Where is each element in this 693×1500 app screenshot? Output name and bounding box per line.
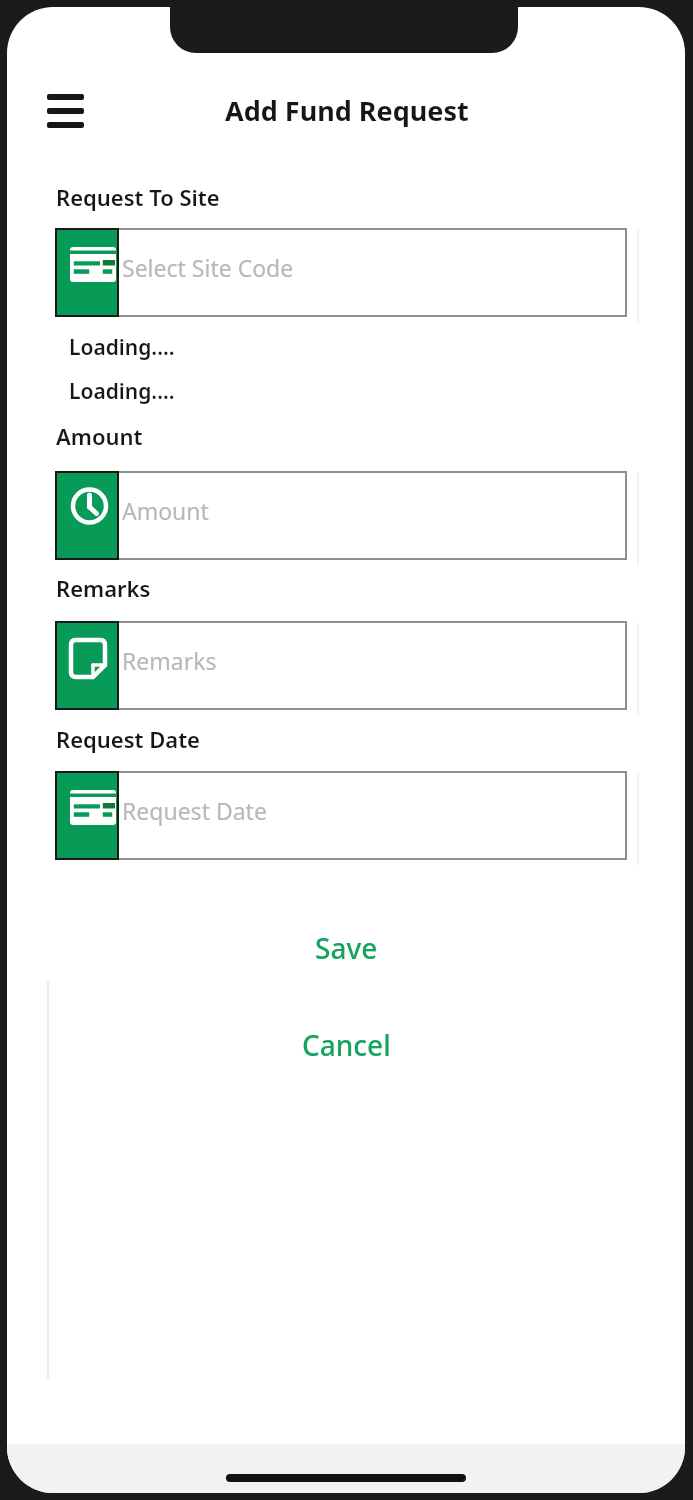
button[interactable]: Select Site Code bbox=[55, 228, 627, 317]
button[interactable]: Cancel bbox=[288, 1022, 405, 1068]
staticText: Remarks bbox=[56, 573, 151, 603]
button[interactable]: Amount bbox=[55, 471, 627, 560]
staticText: Select Site Code bbox=[122, 252, 294, 283]
staticText: Add Fund Request bbox=[225, 92, 469, 129]
staticText: Amount bbox=[122, 495, 209, 526]
button[interactable]: Save bbox=[301, 925, 392, 971]
staticText: Cancel bbox=[302, 1026, 391, 1064]
button[interactable]: Remarks bbox=[55, 621, 627, 710]
staticText: Loading.... bbox=[69, 377, 175, 406]
staticText: Amount bbox=[56, 421, 143, 451]
staticText: Loading.... bbox=[69, 333, 175, 362]
staticText: Save bbox=[315, 929, 378, 967]
staticText: Request Date bbox=[56, 724, 200, 754]
button[interactable] bbox=[41, 88, 89, 134]
staticText: Remarks bbox=[122, 645, 217, 676]
staticText: Request Date bbox=[122, 795, 267, 826]
button[interactable]: Request Date bbox=[55, 771, 627, 860]
staticText: Request To Site bbox=[56, 182, 220, 212]
